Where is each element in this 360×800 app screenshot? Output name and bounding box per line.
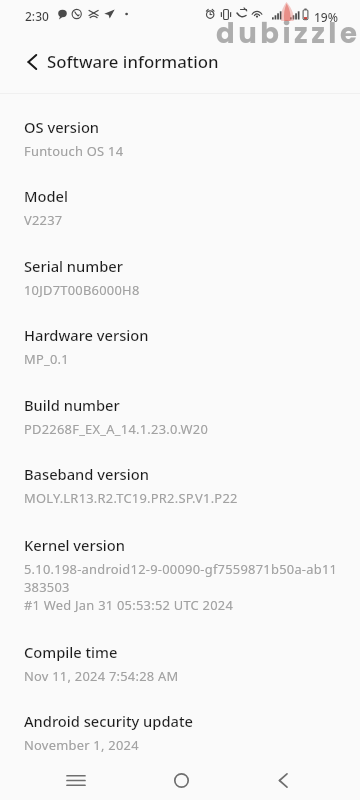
staticText: #1 Wed Jan 31 05:53:52 UTC 2024 xyxy=(24,596,234,614)
staticText: Hardware version xyxy=(24,325,149,345)
button[interactable]: Baseband version xyxy=(0,464,360,507)
staticText: 383503 xyxy=(24,578,70,596)
staticText: PD2268F_EX_A_14.1.23.0.W20 xyxy=(24,420,209,438)
staticText: 5.10.198-android12-9-00090-gf7559871b50a… xyxy=(24,560,338,578)
staticText: MOLY.LR13.R2.TC19.PR2.SP.V1.P22 xyxy=(24,489,238,507)
button[interactable]: Compile time xyxy=(0,642,360,685)
staticText: V2237 xyxy=(24,211,63,229)
button[interactable]: Build number xyxy=(0,395,360,438)
button[interactable]: Kernel version xyxy=(0,535,360,614)
staticText: Build number xyxy=(24,395,120,415)
button[interactable]: Back xyxy=(12,35,53,88)
staticText: Compile time xyxy=(24,642,118,662)
staticText: Nov 11, 2024 7:54:28 AM xyxy=(24,667,179,685)
button[interactable]: Hardware version xyxy=(0,325,360,368)
button[interactable]: Back xyxy=(253,757,313,800)
button[interactable]: Model xyxy=(0,186,360,229)
button[interactable]: OS version xyxy=(0,117,360,160)
button[interactable]: Serial number xyxy=(0,256,360,299)
staticText: Android security update xyxy=(24,711,193,731)
staticText: 2:30 xyxy=(25,8,49,24)
staticText: 10JD7T00B6000H8 xyxy=(24,281,140,299)
staticText: Baseband version xyxy=(24,464,149,484)
button[interactable]: Home xyxy=(151,757,211,800)
staticText: Funtouch OS 14 xyxy=(24,142,124,160)
staticText: MP_0.1 xyxy=(24,350,69,368)
button[interactable]: Recents xyxy=(46,757,106,800)
staticText: 19% xyxy=(314,9,338,25)
staticText: dubizzle xyxy=(216,14,360,52)
staticText: Serial number xyxy=(24,256,123,276)
staticText: November 1, 2024 xyxy=(24,736,139,754)
staticText: Model xyxy=(24,186,68,206)
button[interactable]: Android security update xyxy=(0,711,360,754)
staticText: Kernel version xyxy=(24,535,126,555)
staticText: Software information xyxy=(47,50,219,73)
staticText: OS version xyxy=(24,117,100,137)
